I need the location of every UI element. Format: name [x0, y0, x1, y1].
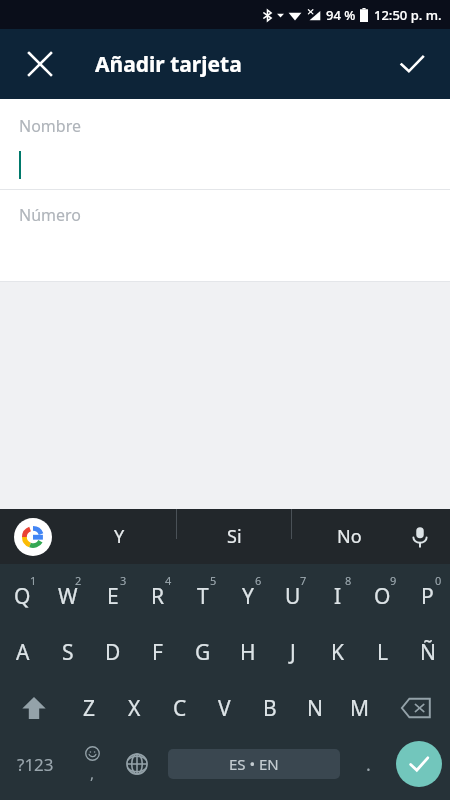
- button[interactable]: Voice input: [398, 515, 442, 559]
- staticText: F: [152, 638, 163, 667]
- staticText: H: [240, 638, 256, 667]
- staticText: J: [290, 638, 296, 667]
- staticText: 5: [210, 573, 217, 588]
- staticText: 6: [255, 573, 262, 588]
- button[interactable]: Si: [177, 509, 291, 564]
- staticText: 3: [120, 573, 127, 588]
- button[interactable]: No: [292, 509, 406, 564]
- button[interactable]: F: [135, 624, 180, 680]
- staticText: Q: [14, 582, 31, 611]
- staticText: N: [307, 694, 323, 723]
- button[interactable]: Enter: [388, 736, 450, 792]
- staticText: No: [337, 524, 362, 549]
- staticText: M: [350, 694, 370, 723]
- button[interactable]: Google: [12, 516, 54, 558]
- button[interactable]: Y: [225, 568, 270, 624]
- staticText: P: [421, 582, 434, 611]
- staticText: .: [366, 752, 371, 777]
- staticText: 1: [30, 573, 37, 588]
- button[interactable]: Emoji: [70, 736, 114, 792]
- staticText: 0: [435, 573, 442, 588]
- staticText: U: [285, 582, 301, 611]
- staticText: ?123: [17, 753, 54, 776]
- button[interactable]: E: [90, 568, 135, 624]
- staticText: ,: [90, 763, 95, 783]
- staticText: O: [374, 582, 391, 611]
- button[interactable]: ?123: [0, 736, 70, 792]
- button[interactable]: D: [90, 624, 135, 680]
- staticText: Ñ: [420, 638, 436, 667]
- staticText: 94 %: [326, 6, 356, 24]
- button[interactable]: R: [135, 568, 180, 624]
- staticText: I: [334, 582, 342, 611]
- button[interactable]: Número: [0, 190, 450, 281]
- button[interactable]: Y: [62, 509, 176, 564]
- button[interactable]: Nombre: [0, 99, 450, 189]
- staticText: G: [195, 638, 211, 667]
- staticText: K: [331, 638, 344, 667]
- staticText: V: [218, 694, 231, 723]
- button[interactable]: J: [270, 624, 315, 680]
- button[interactable]: Save: [388, 40, 436, 88]
- staticText: Nombre: [19, 115, 81, 137]
- button[interactable]: W: [45, 568, 90, 624]
- staticText: Si: [227, 524, 242, 549]
- staticText: ES • EN: [229, 754, 279, 774]
- staticText: Número: [19, 204, 82, 226]
- staticText: S: [62, 638, 74, 667]
- button[interactable]: U: [270, 568, 315, 624]
- button[interactable]: N: [292, 680, 337, 736]
- staticText: Y: [242, 582, 254, 611]
- staticText: T: [197, 582, 209, 611]
- staticText: X: [128, 694, 141, 723]
- button[interactable]: I: [315, 568, 360, 624]
- staticText: B: [263, 694, 277, 723]
- staticText: Y: [114, 524, 125, 549]
- button[interactable]: Shift: [0, 680, 67, 736]
- button[interactable]: .: [348, 736, 388, 792]
- staticText: A: [16, 638, 30, 667]
- staticText: C: [173, 694, 187, 723]
- button[interactable]: L: [360, 624, 405, 680]
- button[interactable]: V: [202, 680, 247, 736]
- staticText: 4: [165, 573, 172, 588]
- button[interactable]: ES • EN: [168, 749, 340, 779]
- staticText: 9: [390, 573, 397, 588]
- button[interactable]: O: [360, 568, 405, 624]
- staticText: Añadir tarjeta: [95, 50, 242, 79]
- staticText: 7: [300, 573, 307, 588]
- button[interactable]: G: [180, 624, 225, 680]
- button[interactable]: M: [337, 680, 382, 736]
- staticText: 8: [345, 573, 352, 588]
- button[interactable]: Ñ: [405, 624, 450, 680]
- button[interactable]: Q: [0, 568, 45, 624]
- button[interactable]: K: [315, 624, 360, 680]
- staticText: 2: [75, 573, 82, 588]
- staticText: E: [107, 582, 119, 611]
- button[interactable]: C: [157, 680, 202, 736]
- staticText: W: [58, 582, 78, 611]
- staticText: L: [377, 638, 389, 667]
- staticText: Z: [83, 694, 96, 723]
- staticText: D: [105, 638, 121, 667]
- button[interactable]: H: [225, 624, 270, 680]
- button[interactable]: T: [180, 568, 225, 624]
- staticText: R: [151, 582, 165, 611]
- button[interactable]: Z: [67, 680, 112, 736]
- button[interactable]: Close: [16, 40, 64, 88]
- button[interactable]: P: [405, 568, 450, 624]
- staticText: 12:50 p. m.: [374, 6, 442, 24]
- button[interactable]: B: [247, 680, 292, 736]
- button[interactable]: X: [112, 680, 157, 736]
- button[interactable]: Backspace: [382, 680, 450, 736]
- button[interactable]: A: [0, 624, 45, 680]
- button[interactable]: S: [45, 624, 90, 680]
- button[interactable]: Change language: [114, 736, 160, 792]
